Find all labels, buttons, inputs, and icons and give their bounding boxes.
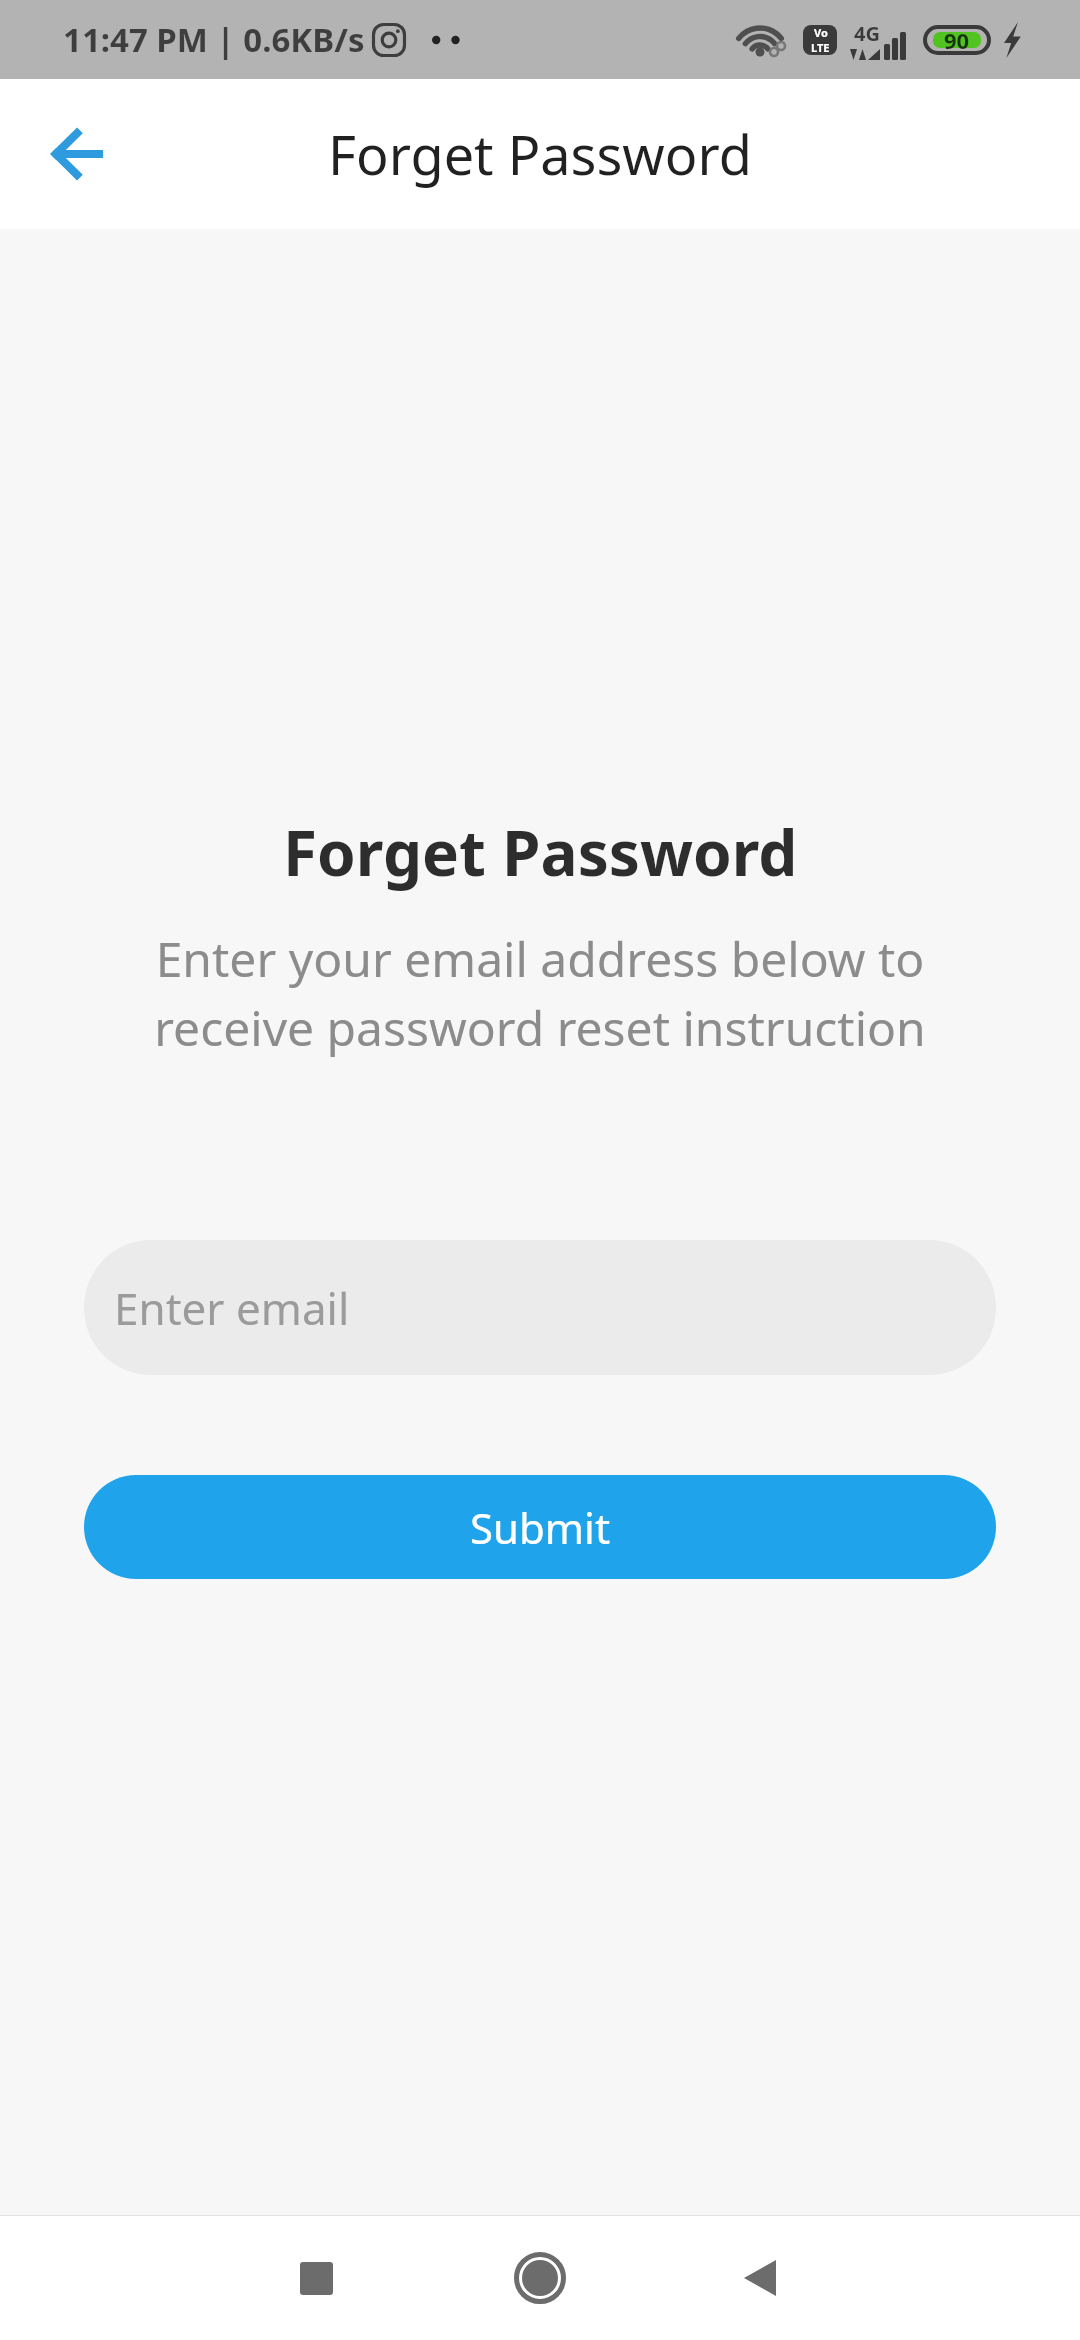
staticText: Forget Password	[328, 117, 752, 191]
button[interactable]: Enter email	[84, 1240, 996, 1375]
staticText: Enter email	[114, 1278, 350, 1338]
button[interactable]	[478, 2216, 602, 2340]
staticText: LTE	[811, 40, 830, 55]
staticText: 11:47 PM | 0.6KB/s	[63, 17, 365, 62]
staticText: Forget Password	[283, 810, 798, 894]
button[interactable]: Submit	[84, 1475, 996, 1579]
staticText: Enter your email address below to receiv…	[154, 926, 926, 1060]
button[interactable]	[30, 107, 124, 201]
staticText: Vo	[814, 25, 828, 40]
staticText: Submit	[470, 1499, 611, 1556]
button[interactable]	[254, 2216, 378, 2340]
staticText: 4G	[854, 20, 880, 47]
staticText: 90	[944, 25, 970, 55]
button[interactable]	[698, 2216, 822, 2340]
